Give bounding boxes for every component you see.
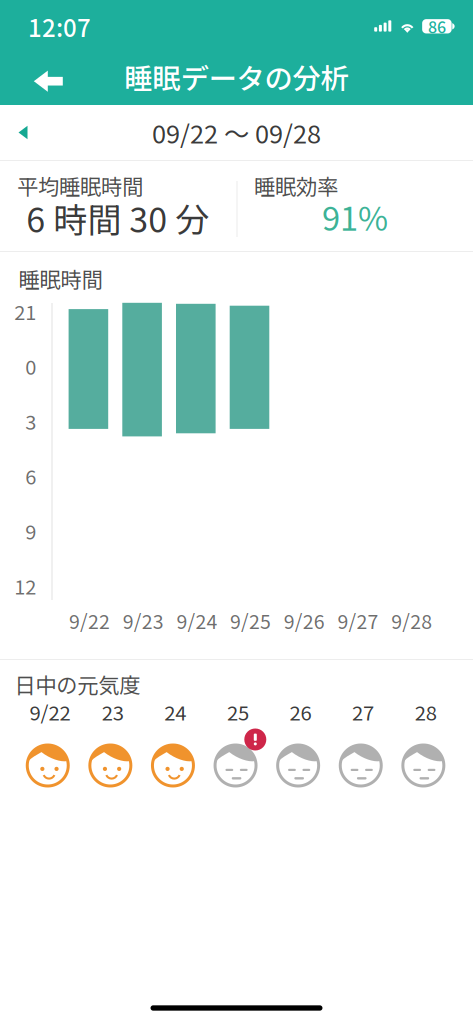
staticText: 睡眠データの分析 [124,56,348,97]
button[interactable]: 26の元気度 [267,740,329,790]
staticText: 6 [25,461,36,490]
staticText: 9/22 [30,697,71,726]
staticText: 9/24 [176,606,217,635]
staticText: 25 [227,697,249,726]
button[interactable]: 24の元気度 [142,740,204,790]
staticText: 0 [25,352,36,381]
staticText: 日中の元気度 [14,669,140,699]
staticText: 27 [352,697,374,726]
staticText: 9/25 [230,606,271,635]
staticText: 86 [428,15,446,38]
staticText: 23 [102,697,124,726]
staticText: 9/22 [69,606,110,635]
staticText: 26 [289,697,311,726]
staticText: 9 [25,516,36,545]
staticText: 3 [25,406,36,435]
staticText: 9/26 [284,606,325,635]
staticText: 24 [164,697,186,726]
staticText: 28 [415,697,437,726]
staticText: 6 時間 30 分 [26,193,209,242]
staticText: 睡眠効率 [254,170,338,201]
button[interactable]: 前の週 [1,107,45,157]
staticText: 12:07 [28,9,91,44]
staticText: 睡眠時間 [18,263,102,294]
staticText: 9/27 [337,606,378,635]
button[interactable]: 戻る [19,55,77,107]
staticText: 平均睡眠時間 [17,170,143,201]
staticText: 9/28 [391,606,432,635]
button[interactable]: 9/22の元気度 [16,740,79,790]
button[interactable]: 28の元気度 [392,740,455,790]
button[interactable]: 27の元気度 [329,740,392,790]
staticText: 09/22 〜 09/28 [152,114,321,151]
button[interactable]: 23の元気度 [79,740,142,790]
button[interactable]: 25の元気度 [204,740,267,790]
staticText: 12 [14,571,36,600]
staticText: 9/23 [123,606,164,635]
staticText: 91% [322,193,388,240]
staticText: 21 [14,297,36,326]
